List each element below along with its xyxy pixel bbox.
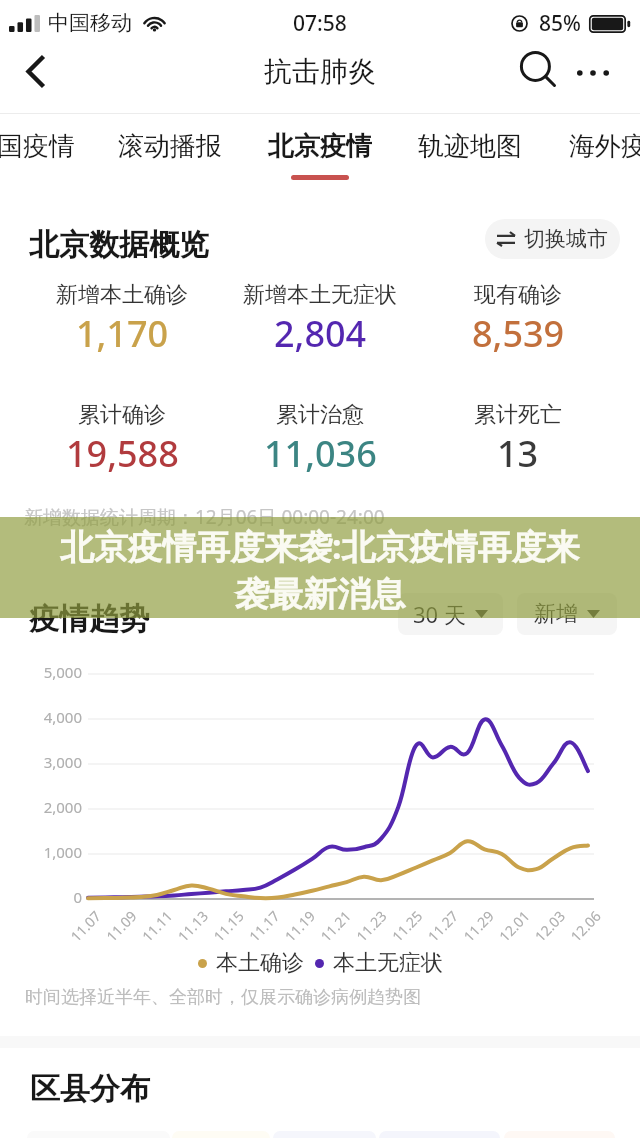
staticText: 北京疫情再度来袭:北京疫情再度来	[60, 523, 580, 569]
staticText: 累计死亡	[474, 401, 562, 429]
staticText: 4,000	[10, 707, 82, 727]
staticText: 北京疫情	[268, 130, 372, 163]
staticText: 海外疫	[569, 130, 640, 163]
staticText: 北京数据概览	[29, 226, 209, 264]
button[interactable]: 新增	[517, 593, 617, 635]
staticText: 区县分布	[30, 1070, 150, 1108]
button[interactable]: 轨迹地图	[395, 114, 545, 184]
button[interactable]: 海外疫	[533, 114, 640, 184]
staticText: 11,036	[264, 429, 377, 478]
staticText: 中国移动	[48, 10, 132, 36]
staticText: 本土无症状	[333, 949, 443, 977]
staticText: 新增	[534, 600, 578, 628]
staticText: 抗击肺炎	[264, 54, 376, 89]
staticText: 滚动播报	[118, 130, 222, 163]
staticText: 国疫情	[0, 130, 75, 163]
staticText: 19,588	[66, 429, 179, 478]
staticText: 3,000	[10, 752, 82, 772]
staticText: 袭最新消息	[235, 573, 405, 616]
staticText: 2,000	[10, 797, 82, 817]
button[interactable]: 30 天	[398, 593, 503, 635]
button[interactable]: More options	[568, 48, 618, 98]
staticText: 新增数据统计周期：12月06日 00:00-24:00	[24, 504, 385, 530]
button[interactable]: Back	[10, 45, 62, 97]
staticText: 时间选择近半年、全部时，仅展示确诊病例趋势图	[25, 986, 421, 1009]
button[interactable]: 北京疫情	[245, 114, 395, 184]
staticText: 本土确诊	[216, 949, 304, 977]
staticText: 疫情趋势	[29, 600, 149, 638]
staticText: 13	[497, 429, 539, 478]
button[interactable]: 滚动播报	[95, 114, 245, 184]
staticText: 85%	[539, 9, 581, 38]
button[interactable]: 国疫情	[0, 114, 111, 184]
staticText: 2,804	[274, 309, 367, 358]
staticText: 新增本土确诊	[56, 281, 188, 309]
staticText: 轨迹地图	[418, 130, 522, 163]
staticText: 累计确诊	[78, 401, 166, 429]
staticText: 0	[10, 887, 82, 907]
staticText: 07:58	[293, 9, 347, 38]
button[interactable]: 切换城市	[485, 219, 620, 259]
button[interactable]: Search	[514, 45, 564, 95]
staticText: 现有确诊	[474, 281, 562, 309]
staticText: 1,000	[10, 842, 82, 862]
staticText: 切换城市	[524, 226, 608, 252]
staticText: 累计治愈	[276, 401, 364, 429]
staticText: 8,539	[472, 309, 565, 358]
staticText: 5,000	[10, 662, 82, 682]
staticText: 30 天	[413, 599, 466, 629]
staticText: 新增本土无症状	[243, 281, 397, 309]
staticText: 1,170	[76, 309, 169, 358]
